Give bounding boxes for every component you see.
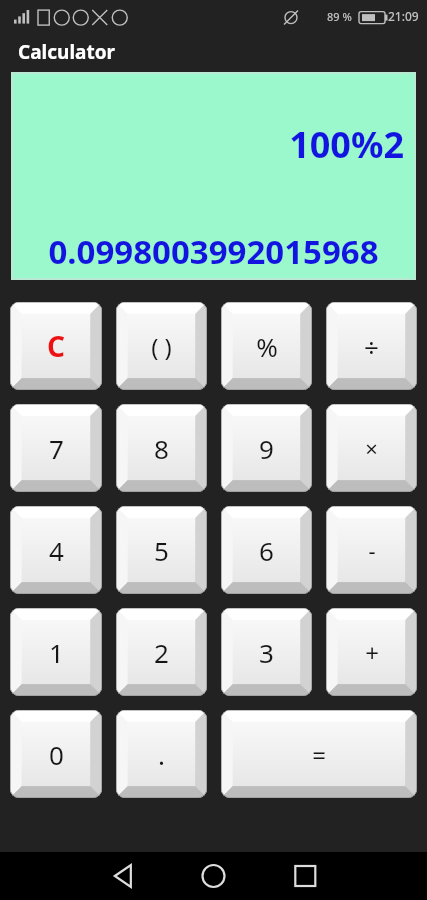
staticText: Calculator	[18, 39, 116, 65]
staticText: ( )	[151, 330, 172, 363]
button[interactable]: 8	[116, 404, 207, 492]
button[interactable]: 1	[10, 608, 102, 696]
button[interactable]: 3	[221, 608, 312, 696]
staticText: ×	[365, 433, 378, 463]
staticText: 4	[49, 533, 64, 568]
button[interactable]: ( )	[116, 302, 207, 390]
staticText: =	[312, 738, 326, 771]
staticText: C	[47, 327, 65, 365]
button[interactable]: C	[10, 302, 102, 390]
staticText: 0	[49, 737, 64, 772]
button[interactable]: 6	[221, 506, 312, 594]
staticText: 3	[259, 635, 274, 670]
staticText: 9	[259, 431, 274, 466]
staticText: 8	[154, 431, 169, 466]
button[interactable]: +	[326, 608, 417, 696]
button[interactable]: 0	[10, 710, 102, 798]
button[interactable]: 5	[116, 506, 207, 594]
staticText: 1	[49, 635, 64, 670]
button[interactable]: =	[221, 710, 417, 798]
staticText: ÷	[364, 329, 379, 364]
button[interactable]: .	[116, 710, 207, 798]
button[interactable]: 2	[116, 608, 207, 696]
button[interactable]: 4	[10, 506, 102, 594]
staticText: .	[158, 737, 165, 772]
staticText: %	[256, 329, 278, 364]
button[interactable]: ÷	[326, 302, 417, 390]
staticText: +	[365, 636, 379, 669]
staticText: 21:09	[388, 8, 419, 24]
staticText: -	[368, 535, 376, 565]
staticText: 5	[154, 533, 169, 568]
staticText: 7	[49, 431, 64, 466]
button[interactable]: 7	[10, 404, 102, 492]
staticText: 0.0998003992015968	[48, 229, 379, 274]
button[interactable]: 9	[221, 404, 312, 492]
staticText: 6	[259, 533, 274, 568]
button[interactable]: ×	[326, 404, 417, 492]
button[interactable]: -	[326, 506, 417, 594]
staticText: 89 %	[327, 9, 352, 24]
staticText: 2	[154, 635, 169, 670]
button[interactable]: %	[221, 302, 312, 390]
staticText: 100%2	[289, 120, 404, 169]
